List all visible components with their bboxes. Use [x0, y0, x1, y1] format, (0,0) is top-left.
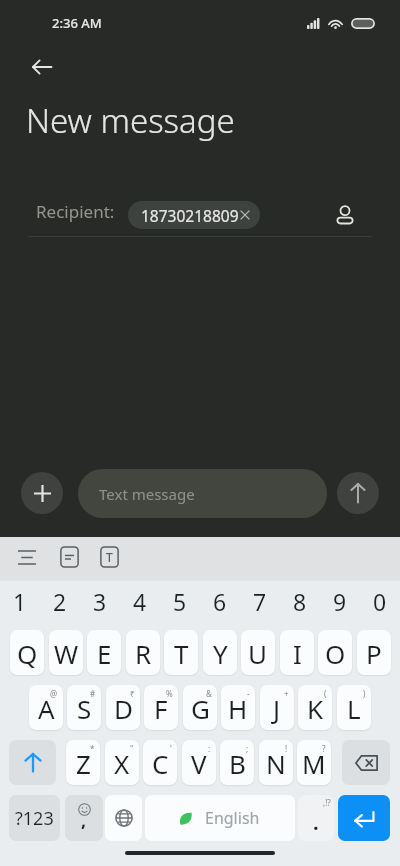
staticText: E: [97, 636, 112, 671]
button[interactable]: 1: [0, 583, 40, 619]
button[interactable]: F: [144, 685, 178, 730]
staticText: P: [366, 636, 382, 671]
button[interactable]: Z: [66, 740, 100, 785]
button[interactable]: N: [259, 740, 293, 785]
staticText: ;: [246, 743, 249, 754]
staticText: 1: [13, 586, 27, 617]
button[interactable]: Emoji and comma: [65, 795, 103, 841]
staticText: K: [307, 691, 324, 726]
button[interactable]: S: [67, 685, 101, 730]
button[interactable]: Back: [19, 44, 65, 90]
staticText: C: [152, 746, 169, 781]
staticText: English: [205, 807, 260, 829]
button[interactable]: P: [357, 630, 391, 675]
button[interactable]: Shift: [9, 740, 56, 785]
staticText: S: [77, 691, 92, 726]
button[interactable]: T: [164, 630, 198, 675]
staticText: H: [228, 691, 248, 726]
staticText: W: [54, 636, 79, 671]
staticText: -: [247, 688, 250, 699]
button[interactable]: Menu: [7, 537, 47, 577]
button[interactable]: M: [297, 740, 331, 785]
button[interactable]: Add contact: [322, 192, 368, 238]
button[interactable]: Text message: [78, 469, 327, 518]
staticText: 4: [133, 586, 147, 617]
staticText: A: [38, 691, 55, 726]
staticText: Q: [17, 636, 38, 671]
staticText: 2: [53, 586, 67, 617]
staticText: 9: [333, 586, 347, 617]
staticText: G: [191, 691, 210, 726]
button[interactable]: R: [126, 630, 160, 675]
staticText: I: [293, 636, 302, 671]
button[interactable]: G: [183, 685, 217, 730]
staticText: T: [106, 549, 113, 565]
button[interactable]: Q: [10, 630, 44, 675]
button[interactable]: 4: [120, 583, 160, 619]
staticText: T: [174, 636, 189, 671]
button[interactable]: A: [29, 685, 63, 730]
button[interactable]: 8: [280, 583, 320, 619]
staticText: @: [50, 688, 58, 699]
button[interactable]: D: [106, 685, 140, 730]
button[interactable]: 2: [40, 583, 80, 619]
staticText: +: [284, 688, 289, 699]
button[interactable]: X: [105, 740, 139, 785]
button[interactable]: Period: [298, 795, 334, 841]
button[interactable]: 0: [360, 583, 400, 619]
button[interactable]: 5: [160, 583, 200, 619]
button[interactable]: Backspace: [342, 740, 390, 785]
button[interactable]: J: [260, 685, 294, 730]
staticText: ": [130, 743, 134, 754]
staticText: J: [273, 691, 281, 726]
button[interactable]: I: [280, 630, 314, 675]
button[interactable]: H: [221, 685, 255, 730]
staticText: !: [285, 743, 288, 754]
staticText: D: [114, 691, 133, 726]
button[interactable]: 3: [80, 583, 120, 619]
staticText: 3: [93, 586, 107, 617]
button[interactable]: B: [220, 740, 254, 785]
staticText: 8: [293, 586, 307, 617]
staticText: ₹: [130, 688, 135, 699]
button[interactable]: 9: [320, 583, 360, 619]
button[interactable]: C: [143, 740, 177, 785]
staticText: 18730218809: [141, 205, 239, 226]
button[interactable]: 18730218809: [128, 201, 260, 229]
staticText: ?123: [15, 806, 54, 831]
staticText: Text message: [99, 484, 195, 504]
staticText: U: [248, 636, 268, 671]
button[interactable]: W: [49, 630, 83, 675]
button[interactable]: Clipboard: [49, 537, 89, 577]
button[interactable]: 7: [240, 583, 280, 619]
button[interactable]: ?123: [9, 795, 60, 841]
button[interactable]: Text style: [89, 537, 129, 577]
staticText: New message: [26, 98, 235, 143]
staticText: X: [114, 746, 130, 781]
button[interactable]: Send: [337, 472, 379, 514]
button[interactable]: Attach: [21, 472, 63, 514]
button[interactable]: O: [318, 630, 352, 675]
button[interactable]: U: [241, 630, 275, 675]
staticText: L: [347, 691, 361, 726]
button[interactable]: 6: [200, 583, 240, 619]
button[interactable]: Change language: [105, 795, 142, 841]
button[interactable]: Enter: [338, 795, 390, 841]
staticText: M: [302, 746, 326, 781]
button[interactable]: E: [87, 630, 121, 675]
staticText: (: [324, 688, 327, 699]
staticText: %: [166, 688, 173, 699]
button[interactable]: V: [182, 740, 216, 785]
staticText: O: [325, 636, 346, 671]
staticText: :: [208, 743, 211, 754]
staticText: F: [154, 691, 168, 726]
staticText: 6: [213, 586, 227, 617]
button[interactable]: L: [337, 685, 371, 730]
button[interactable]: K: [298, 685, 332, 730]
staticText: #: [90, 688, 96, 699]
staticText: 2:36 AM: [52, 14, 102, 32]
staticText: 0: [373, 586, 387, 617]
button[interactable]: English: [145, 795, 295, 841]
button[interactable]: Y: [203, 630, 237, 675]
staticText: ': [170, 743, 172, 754]
